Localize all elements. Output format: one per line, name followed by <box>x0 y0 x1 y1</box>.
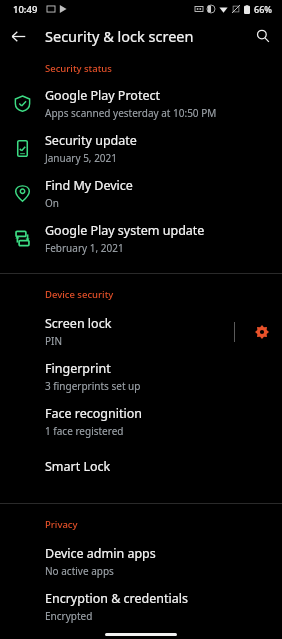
staticText: Device security <box>45 288 114 301</box>
staticText: Smart Lock <box>45 458 111 475</box>
button[interactable]: Security update <box>0 126 282 171</box>
staticText: Security & lock screen <box>45 26 194 46</box>
button[interactable]: Face recognition <box>0 399 282 444</box>
button[interactable]: Google Play system update <box>0 216 282 261</box>
staticText: Device admin apps <box>45 545 156 562</box>
staticText: Find My Device <box>45 177 133 194</box>
button[interactable]: Smart Lock <box>0 444 282 489</box>
button[interactable]: Search <box>250 23 276 49</box>
staticText: Face recognition <box>45 405 142 422</box>
staticText: PIN <box>45 334 63 348</box>
staticText: Encryption & credentials <box>45 590 188 607</box>
staticText: Google Play Protect <box>45 87 160 104</box>
button[interactable]: Device admin apps <box>0 539 282 584</box>
staticText: Security status <box>45 62 112 75</box>
staticText: 3 fingerprints set up <box>45 379 141 393</box>
button[interactable]: Fingerprint <box>0 354 282 399</box>
staticText: 1 face registered <box>45 424 124 438</box>
staticText: Privacy <box>45 518 78 531</box>
staticText: Google Play system update <box>45 222 205 239</box>
staticText: Security update <box>45 132 137 149</box>
button[interactable]: Encryption & credentials <box>0 584 282 629</box>
staticText: February 1, 2021 <box>45 241 124 255</box>
button[interactable]: Google Play Protect <box>0 81 282 126</box>
button[interactable]: Back <box>5 23 31 49</box>
staticText: 10:49 <box>13 3 38 16</box>
staticText: Encrypted <box>45 609 93 623</box>
staticText: Screen lock <box>45 315 112 332</box>
button[interactable]: Screen lock settings <box>242 312 282 352</box>
button[interactable]: Screen lock <box>0 309 282 354</box>
staticText: Apps scanned yesterday at 10:50 PM <box>45 106 217 120</box>
staticText: On <box>45 196 59 210</box>
button[interactable]: Find My Device <box>0 171 282 216</box>
staticText: No active apps <box>45 564 114 578</box>
staticText: Fingerprint <box>45 360 111 377</box>
staticText: 66% <box>254 3 272 15</box>
staticText: January 5, 2021 <box>45 151 118 165</box>
